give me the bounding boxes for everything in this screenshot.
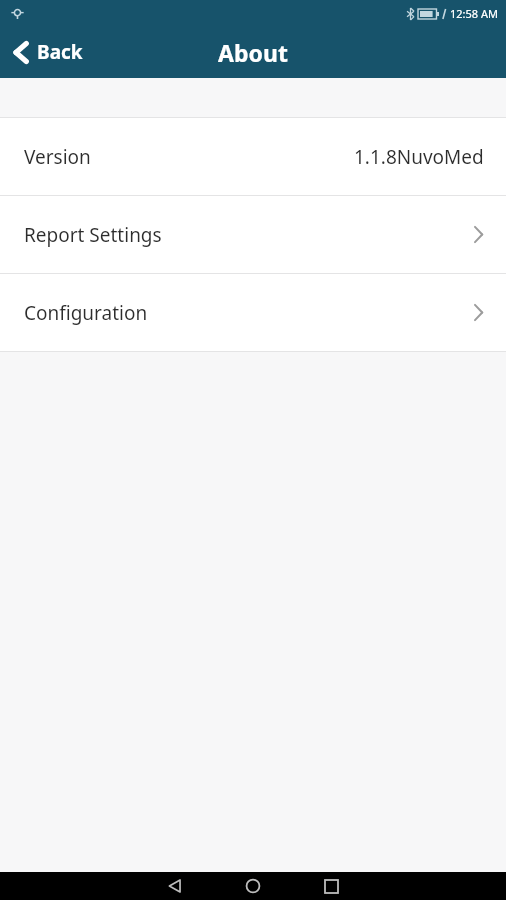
button[interactable]: Configuration bbox=[0, 274, 506, 351]
staticText: Report Settings bbox=[24, 222, 162, 248]
staticText: 12:58 AM bbox=[450, 6, 498, 21]
staticText: 1.1.8NuvoMed bbox=[354, 144, 484, 170]
button[interactable]: Back bbox=[0, 26, 99, 78]
button[interactable]: Back bbox=[149, 872, 201, 900]
button[interactable]: Report Settings bbox=[0, 196, 506, 273]
button[interactable]: Home bbox=[227, 872, 279, 900]
button[interactable]: Version bbox=[0, 118, 506, 195]
staticText: About bbox=[218, 37, 288, 68]
staticText: Back bbox=[37, 39, 83, 65]
staticText: Version bbox=[24, 144, 91, 170]
staticText: Configuration bbox=[24, 300, 148, 326]
button[interactable]: Recent apps bbox=[305, 872, 357, 900]
